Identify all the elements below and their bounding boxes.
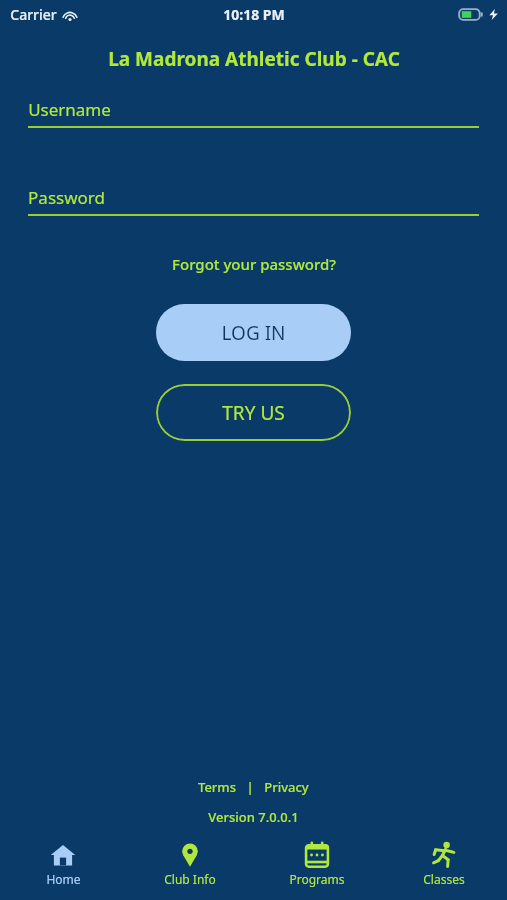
staticText: Password — [28, 186, 105, 209]
button[interactable]: LOG IN — [156, 304, 351, 361]
staticText: Username — [28, 98, 111, 121]
button[interactable]: Password — [28, 186, 479, 216]
staticText: 10:18 PM — [223, 5, 285, 24]
button[interactable]: Privacy — [260, 776, 313, 798]
staticText: Version 7.0.0.1 — [208, 808, 299, 826]
staticText: Club Info — [164, 871, 216, 887]
staticText: Forgot your password? — [172, 254, 336, 274]
staticText: TRY US — [222, 400, 285, 426]
staticText: | — [246, 778, 254, 796]
other: Home — [50, 842, 76, 868]
staticText: Programs — [289, 871, 345, 887]
staticText: Privacy — [264, 778, 309, 796]
staticText: Terms — [198, 778, 236, 796]
staticText: LOG IN — [221, 320, 286, 346]
button[interactable]: Terms — [194, 776, 240, 798]
other: Club Info — [177, 842, 203, 868]
staticText: La Madrona Athletic Club - CAC — [108, 46, 400, 72]
staticText: Classes — [423, 871, 465, 887]
button[interactable]: Home — [0, 838, 126, 887]
button[interactable]: Club Info — [126, 838, 253, 887]
other: Classes — [431, 842, 457, 868]
staticText: Carrier — [10, 5, 57, 24]
button[interactable]: TRY US — [156, 384, 351, 441]
button[interactable]: Programs — [253, 838, 380, 887]
other: Programs — [304, 842, 330, 868]
staticText: Home — [46, 871, 81, 887]
button[interactable]: Classes — [380, 838, 507, 887]
button[interactable]: Forgot your password? — [164, 250, 344, 278]
button[interactable]: Username — [28, 98, 479, 128]
